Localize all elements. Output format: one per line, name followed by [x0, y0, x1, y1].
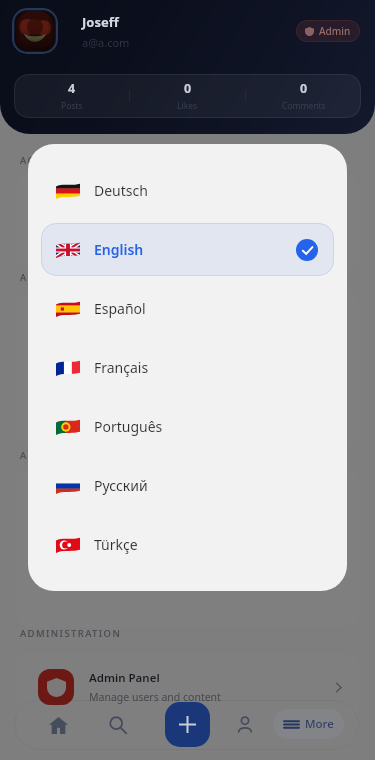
button[interactable]: Add [165, 702, 210, 747]
button[interactable]: Español [41, 282, 334, 335]
staticText: Joseff [82, 13, 119, 31]
staticText: English [94, 240, 144, 259]
staticText: More [305, 716, 334, 732]
staticText: ABOUT [20, 449, 60, 462]
staticText: APPEARANCE [20, 271, 95, 284]
staticText: a@a.com [82, 35, 130, 50]
staticText: Admin [319, 24, 351, 38]
staticText: Admin Panel [89, 670, 160, 686]
staticText: Likes [177, 100, 198, 112]
staticText: ACCOUNT [20, 154, 75, 167]
staticText: 0 [300, 80, 308, 97]
staticText: Comments [282, 100, 326, 112]
button[interactable]: Admin [296, 20, 360, 42]
staticText: Türkçe [94, 535, 138, 554]
staticText: Español [94, 299, 146, 318]
staticText: ADMINISTRATION [20, 627, 122, 640]
staticText: Русский [94, 476, 148, 495]
button[interactable]: More [273, 709, 344, 739]
staticText: Português [94, 417, 163, 436]
staticText: 4 [68, 80, 76, 97]
button[interactable]: English [41, 223, 334, 276]
staticText: Français [94, 358, 149, 377]
staticText: Manage users and content [89, 690, 221, 704]
button[interactable]: Français [41, 341, 334, 394]
button[interactable]: Search [98, 703, 138, 747]
staticText: Deutsch [94, 181, 148, 200]
button[interactable]: Русский [41, 459, 334, 512]
staticText: 0 [184, 80, 192, 97]
button[interactable]: Türkçe [41, 518, 334, 571]
button[interactable]: Português [41, 400, 334, 453]
button[interactable]: Deutsch [41, 164, 334, 217]
staticText: Posts [61, 100, 83, 112]
button[interactable]: Profile [225, 703, 265, 747]
button[interactable]: Home [38, 703, 78, 747]
